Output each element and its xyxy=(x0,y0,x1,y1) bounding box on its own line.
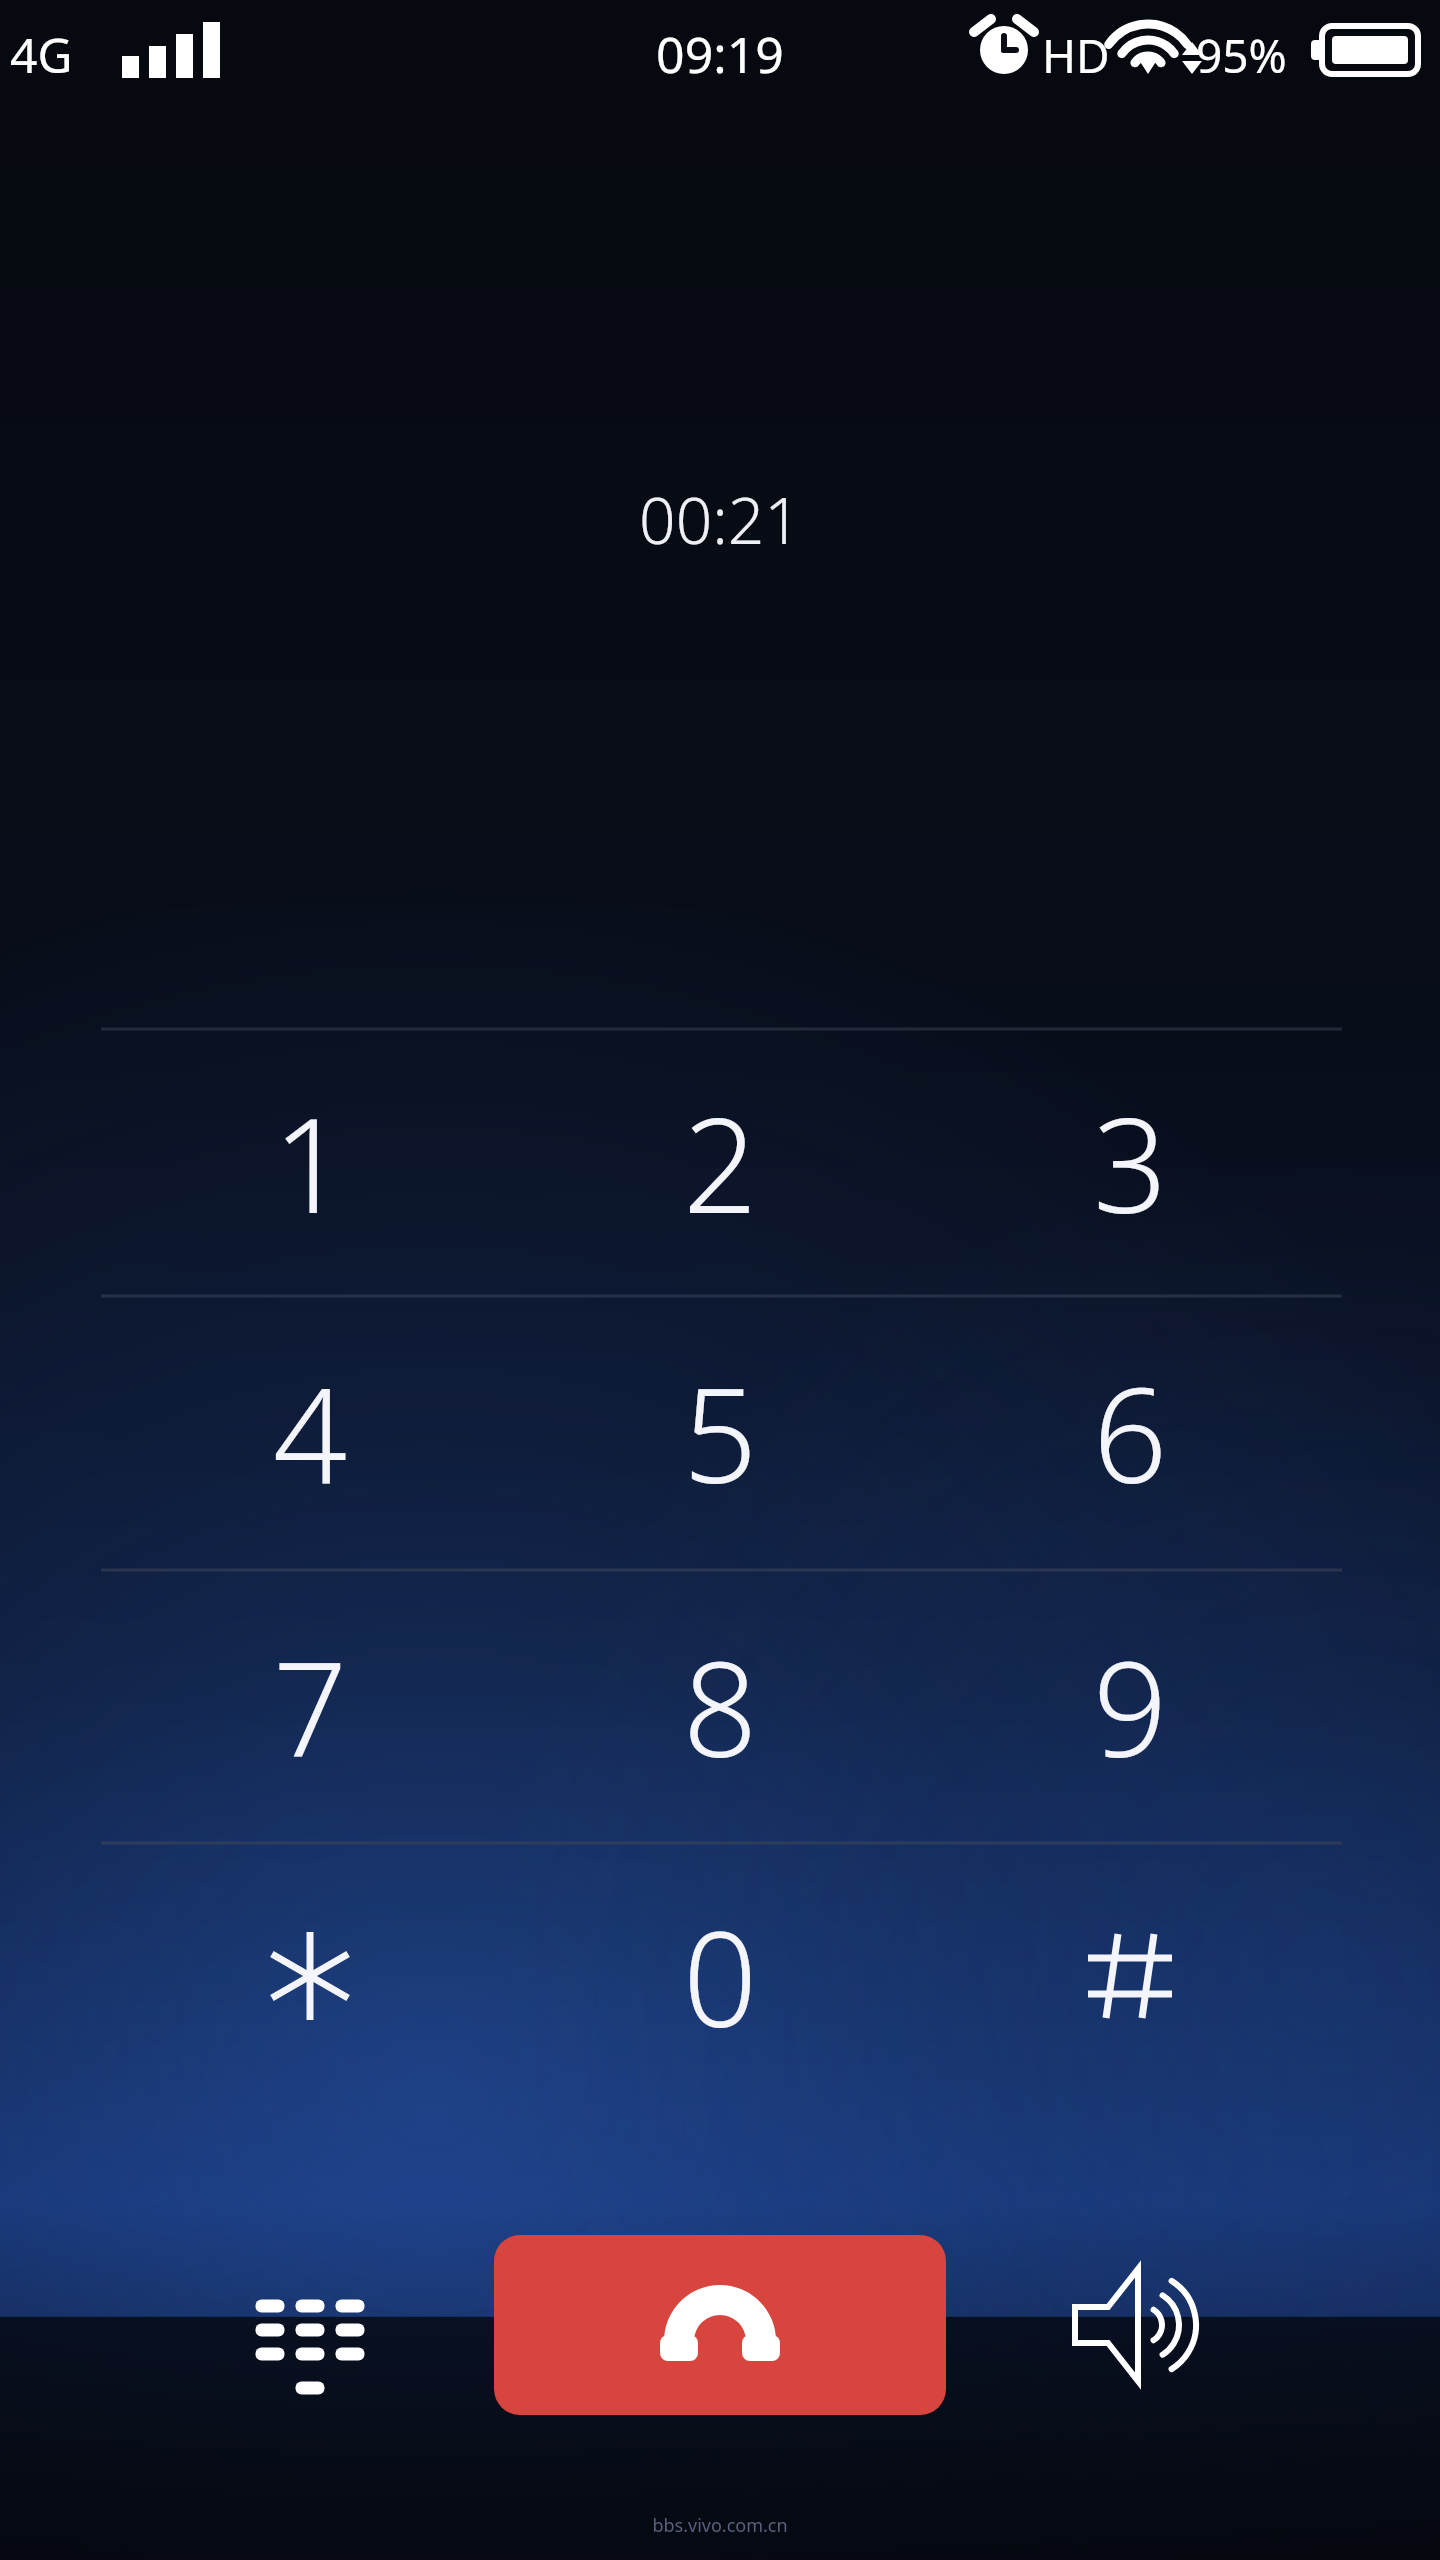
button[interactable]: 8 xyxy=(515,1572,925,1840)
button[interactable]: 2 xyxy=(515,1028,925,1296)
staticText: 4G xyxy=(10,22,73,87)
staticText: 4 xyxy=(273,1344,348,1521)
staticText: 8 xyxy=(683,1618,758,1795)
button[interactable]: Hide keypad xyxy=(210,2230,410,2430)
staticText: 95% xyxy=(1196,24,1287,87)
staticText: 6 xyxy=(1093,1344,1168,1521)
staticText: HD xyxy=(1042,24,1110,87)
button[interactable] xyxy=(925,1842,1335,2110)
staticText: 09:19 xyxy=(0,20,1440,88)
staticText: 7 xyxy=(273,1618,348,1795)
button[interactable]: 5 xyxy=(515,1298,925,1566)
staticText: 00:21 xyxy=(0,476,1440,563)
staticText: 5 xyxy=(683,1344,758,1521)
button[interactable]: 4 xyxy=(105,1298,515,1566)
staticText: 2 xyxy=(683,1074,758,1251)
staticText: 1 xyxy=(273,1074,348,1251)
button[interactable]: Speaker xyxy=(1030,2225,1230,2425)
button[interactable]: 3 xyxy=(925,1028,1335,1296)
staticText: 3 xyxy=(1093,1074,1168,1251)
button[interactable]: 7 xyxy=(105,1572,515,1840)
button[interactable]: 1 xyxy=(105,1028,515,1296)
button[interactable] xyxy=(105,1842,515,2110)
staticText: 9 xyxy=(1093,1618,1168,1795)
button[interactable]: 9 xyxy=(925,1572,1335,1840)
staticText: 0 xyxy=(683,1888,758,2065)
button[interactable]: 6 xyxy=(925,1298,1335,1566)
button[interactable]: 0 xyxy=(515,1842,925,2110)
button[interactable]: End call xyxy=(494,2235,946,2415)
staticText: bbs.vivo.com.cn xyxy=(0,2513,1440,2538)
